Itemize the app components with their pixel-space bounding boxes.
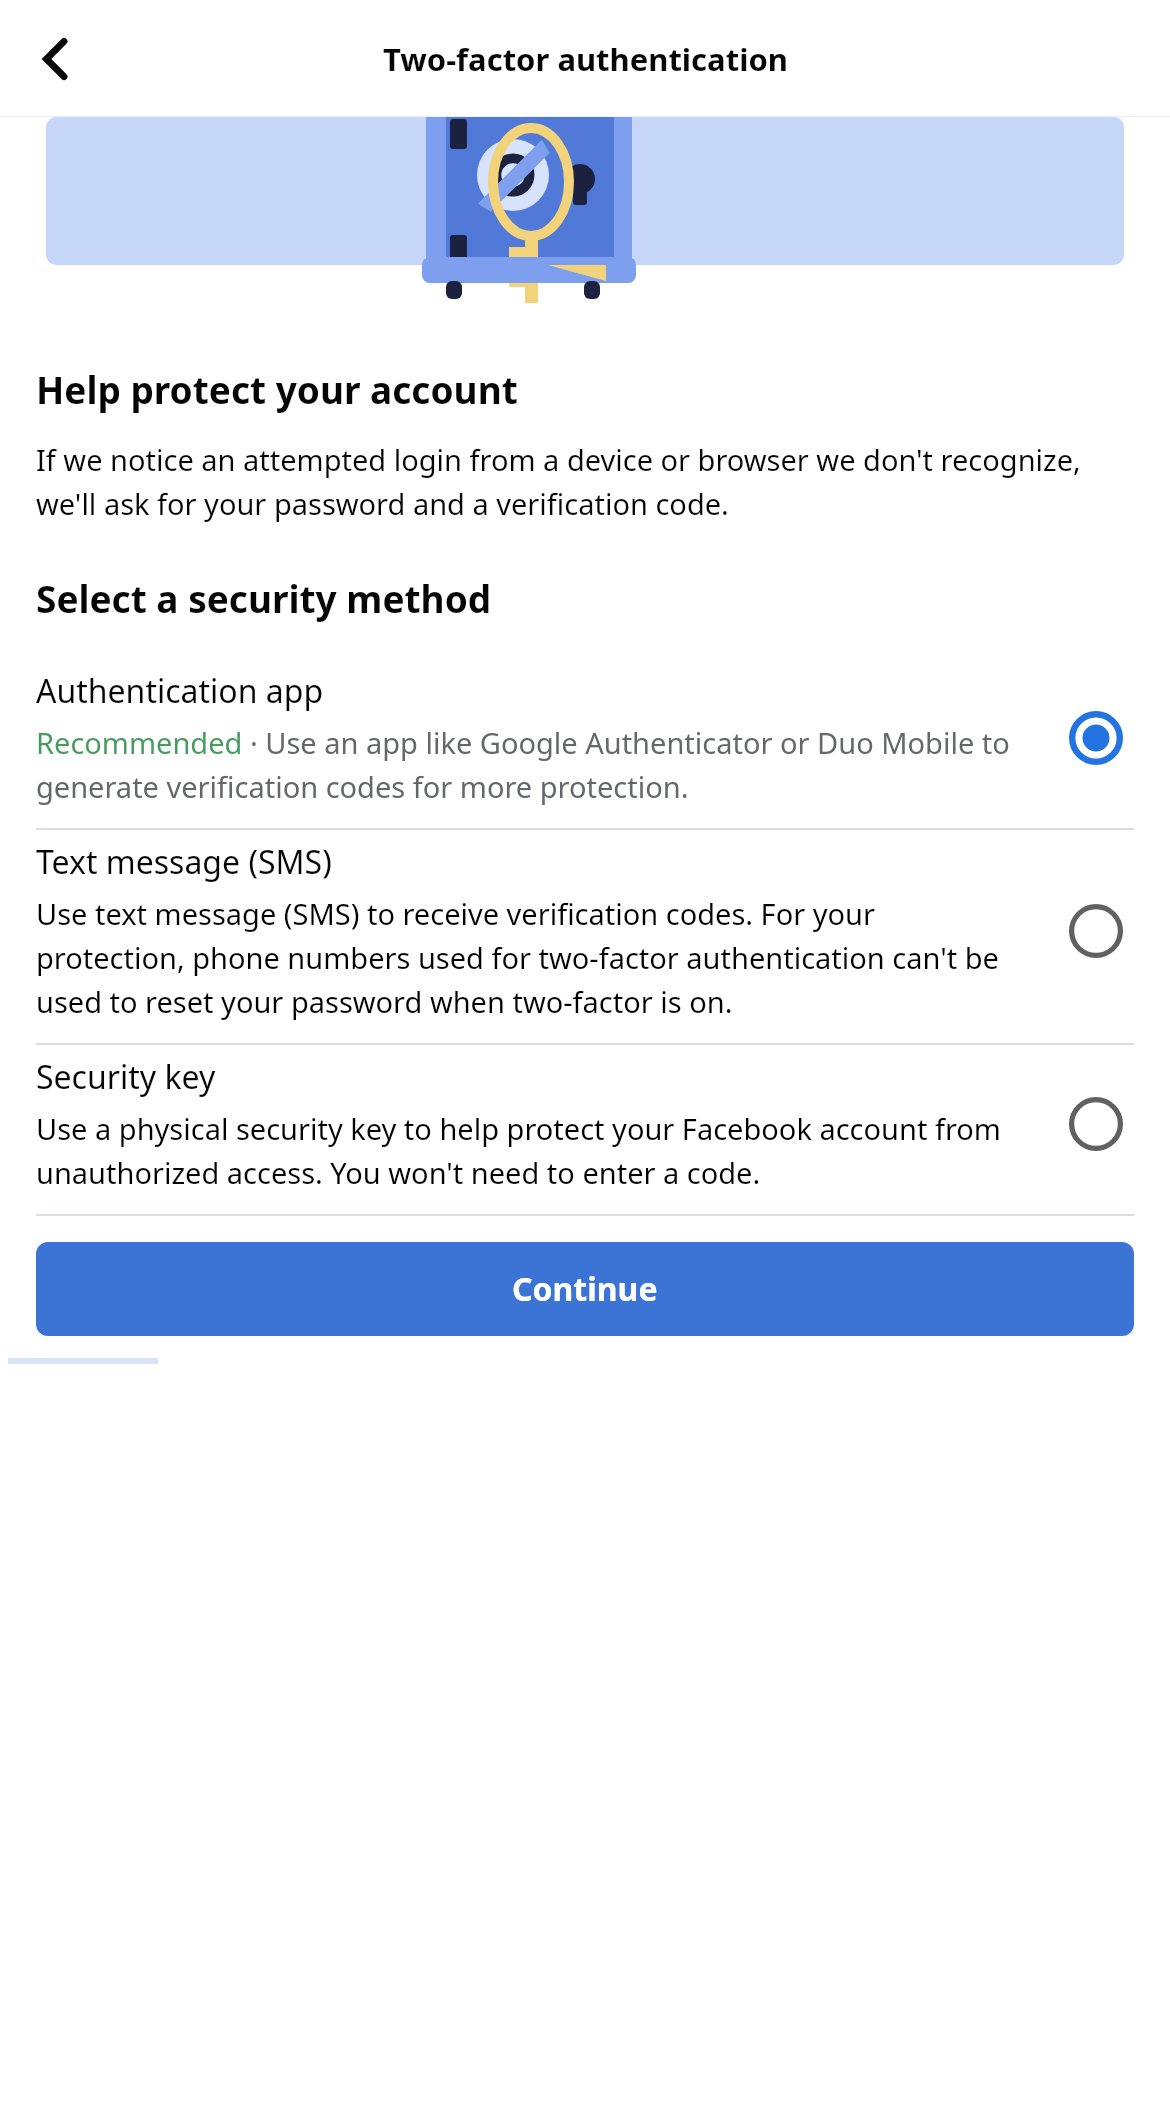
staticText: Authentication app: [36, 669, 324, 713]
staticText: Text message (SMS): [36, 840, 332, 884]
staticText: Continue: [512, 1267, 658, 1311]
button[interactable]: Text message (SMS): [36, 830, 1134, 1043]
staticText: Use a physical security key to help prot…: [36, 1109, 1030, 1192]
staticText: Security key: [36, 1055, 216, 1099]
button[interactable]: Security key: [36, 1045, 1134, 1214]
staticText: Select a security method: [36, 573, 492, 623]
staticText: Two-factor authentication: [383, 38, 788, 80]
staticText: Use text message (SMS) to receive verifi…: [36, 894, 1030, 1021]
button[interactable]: Authentication app: [36, 659, 1134, 828]
staticText: Help protect your account: [36, 364, 518, 414]
button[interactable]: Back: [14, 16, 100, 102]
button[interactable]: Continue: [36, 1242, 1134, 1336]
staticText: Recommended · Use an app like Google Aut…: [36, 723, 1030, 806]
staticText: If we notice an attempted login from a d…: [36, 440, 1134, 523]
